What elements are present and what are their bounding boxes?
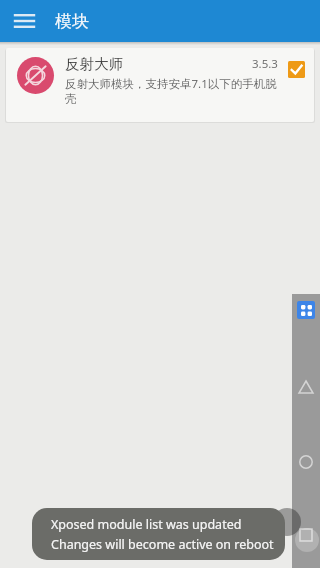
- button[interactable]: Home: [292, 448, 320, 476]
- button[interactable]: Back: [292, 373, 320, 401]
- staticText: Changes will become active on reboot: [51, 536, 274, 553]
- button[interactable]: Recent apps: [292, 521, 320, 549]
- staticText: 3.5.3: [252, 56, 278, 72]
- button[interactable]: All apps: [297, 301, 315, 319]
- staticText: 反射大师模块，支持安卓7.1以下的手机脱壳: [65, 76, 285, 107]
- button[interactable]: Toggle module enabled: [285, 58, 307, 80]
- staticText: 反射大师: [65, 55, 123, 73]
- button[interactable]: Open navigation drawer: [8, 5, 40, 37]
- button[interactable]: Xposed module list was updated: [32, 508, 285, 560]
- staticText: 模块: [55, 11, 89, 32]
- staticText: Xposed module list was updated: [51, 516, 242, 533]
- button[interactable]: 反射大师: [6, 48, 314, 122]
